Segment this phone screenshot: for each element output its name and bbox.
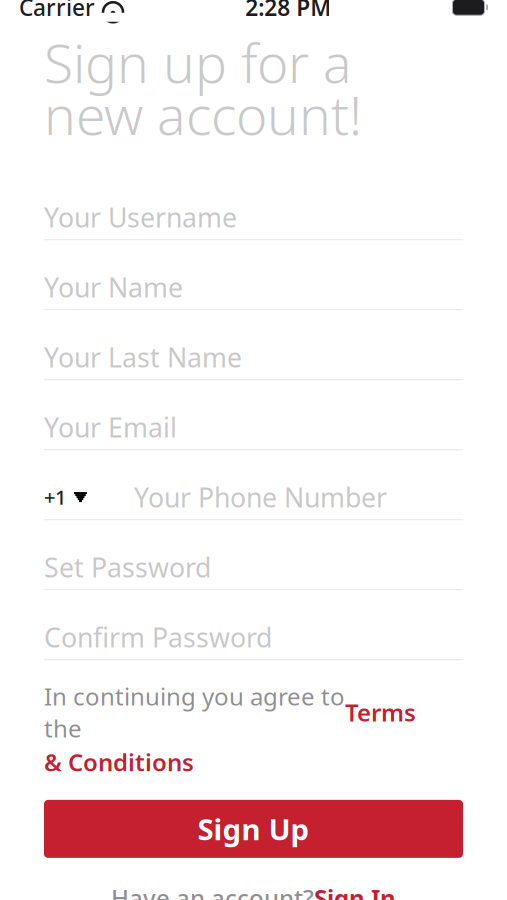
staticText: In continuing you agree to the — [44, 680, 345, 744]
staticText: Your Name — [44, 269, 183, 305]
staticText: 2:28 PM — [245, 0, 331, 22]
staticText: Confirm Password — [44, 619, 272, 655]
staticText: Have an account? — [111, 882, 314, 900]
staticText: Set Password — [44, 549, 211, 585]
button[interactable]: Sign In — [314, 882, 396, 900]
staticText: Sign In — [314, 882, 396, 900]
staticText: Your Email — [44, 409, 177, 445]
staticText: Sign Up — [197, 809, 309, 848]
button[interactable]: & Conditions — [44, 746, 463, 778]
staticText: Your Phone Number — [134, 479, 387, 515]
staticText: Sign up for a — [44, 27, 352, 98]
button[interactable]: Sign Up — [44, 800, 463, 858]
staticText: Carrier — [19, 0, 95, 22]
staticText: Your Username — [44, 199, 237, 235]
staticText: & Conditions — [44, 746, 194, 778]
staticText: new account! — [44, 79, 362, 150]
staticText: +1 — [44, 484, 66, 510]
staticText: Terms — [345, 696, 416, 728]
button[interactable]: Terms — [345, 696, 416, 728]
staticText: Your Last Name — [44, 339, 242, 375]
button[interactable]: +1 — [44, 475, 106, 519]
